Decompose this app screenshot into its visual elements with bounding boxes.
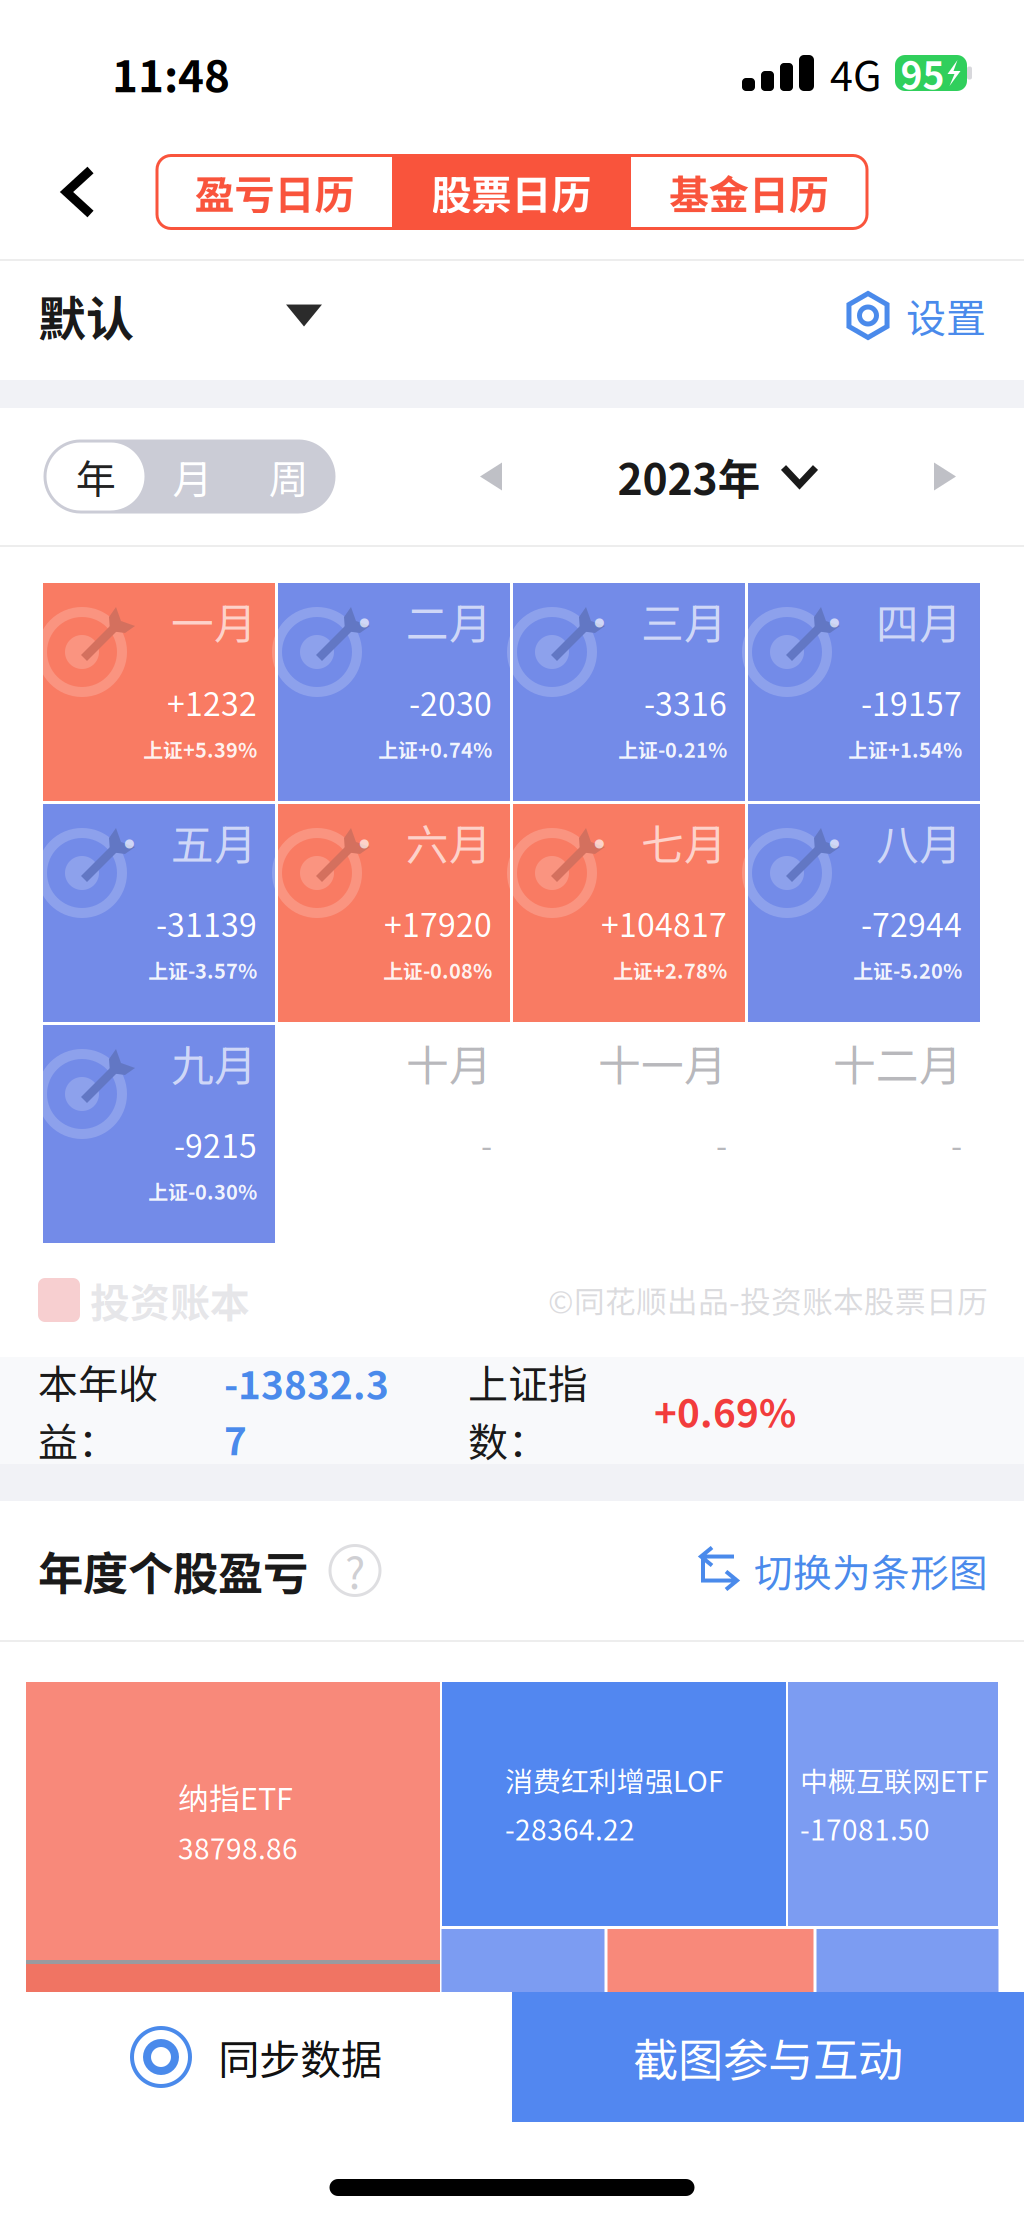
staticText: · 四月 — [813, 590, 962, 652]
staticText: +0.69% — [654, 1382, 796, 1438]
staticText: · 七月 — [578, 811, 727, 873]
staticText: 设置 — [906, 286, 986, 344]
button[interactable]: 十二月 — [748, 1025, 980, 1243]
button[interactable]: 周 — [240, 442, 336, 510]
staticText: ? — [345, 1540, 365, 1601]
staticText: - — [716, 1121, 727, 1167]
staticText: 消费红利增强LOF — [505, 1759, 723, 1800]
staticText: 切换为条形图 — [754, 1542, 988, 1598]
button[interactable]: · 三月 — [513, 583, 745, 801]
button[interactable]: 盈亏日历 — [157, 155, 392, 228]
button[interactable]: 设置 — [844, 261, 1024, 370]
staticText: +1232 — [167, 679, 257, 725]
button[interactable]: 消费红利增强LOF — [442, 1682, 786, 1926]
staticText: 十月 — [406, 1032, 492, 1094]
button[interactable]: 基金日历 — [631, 155, 867, 228]
staticText: 基金日历 — [669, 163, 829, 221]
staticText: 上证-0.21% — [618, 734, 727, 763]
staticText: ©同花顺出品-投资账本股票日历 — [548, 1278, 988, 1322]
staticText: 十二月 — [833, 1032, 962, 1094]
staticText: 默认 — [38, 281, 134, 350]
staticText: 上证+2.78% — [613, 955, 727, 984]
button[interactable]: Back — [0, 142, 157, 242]
button[interactable]: · 五月 — [43, 804, 275, 1022]
staticText: 十一月 — [598, 1032, 727, 1094]
staticText: 本年收益： — [38, 1353, 158, 1468]
staticText: +104817 — [601, 900, 727, 946]
button[interactable]: 默认 — [0, 261, 322, 370]
staticText: -2030 — [409, 679, 492, 725]
staticText: 月 — [172, 447, 212, 505]
staticText: -72944 — [861, 900, 962, 946]
staticText: · 三月 — [578, 590, 727, 652]
staticText: 4G — [830, 43, 881, 103]
button[interactable]: · 六月 — [278, 804, 510, 1022]
button[interactable]: 年 — [46, 442, 144, 510]
staticText: 一月 — [171, 590, 257, 652]
staticText: -13832.37 — [224, 1354, 389, 1466]
staticText: · 六月 — [343, 811, 492, 873]
staticText: · 八月 — [813, 811, 962, 873]
staticText: 年 — [75, 447, 115, 505]
staticText: 38798.86 — [178, 1827, 298, 1867]
staticText: -28364.22 — [505, 1808, 635, 1848]
staticText: 上证+0.74% — [378, 734, 492, 763]
staticText: 中概互联网ETF — [800, 1759, 988, 1800]
button[interactable]: · 四月 — [748, 583, 980, 801]
staticText: 上证-0.30% — [148, 1176, 257, 1205]
button[interactable]: Previous year — [454, 439, 528, 513]
button[interactable]: 股票日历 — [392, 155, 631, 228]
staticText: 上证-0.08% — [383, 955, 492, 984]
staticText: 上证-5.20% — [853, 955, 962, 984]
staticText: · 五月 — [108, 811, 257, 873]
staticText: -19157 — [861, 679, 962, 725]
staticText: -31139 — [156, 900, 257, 946]
staticText: 盈亏日历 — [194, 163, 354, 221]
button[interactable]: 截图参与互动 — [512, 1992, 1024, 2122]
staticText: -9215 — [174, 1121, 257, 1167]
staticText: 上证+5.39% — [143, 734, 257, 763]
staticText: 投资账本 — [90, 1271, 250, 1329]
button[interactable]: 十一月 — [513, 1025, 745, 1243]
staticText: · 二月 — [343, 590, 492, 652]
button[interactable]: Next year — [908, 439, 982, 513]
staticText: 95 — [900, 46, 944, 100]
staticText: 九月 — [171, 1032, 257, 1094]
staticText: 周 — [268, 447, 308, 505]
staticText: -17081.50 — [800, 1808, 930, 1848]
staticText: 上证指数： — [468, 1353, 588, 1468]
button[interactable]: 纳指ETF — [26, 1682, 440, 1960]
button[interactable]: 九月 — [43, 1025, 275, 1243]
staticText: - — [951, 1121, 962, 1167]
button[interactable]: · 八月 — [748, 804, 980, 1022]
staticText: +17920 — [384, 900, 492, 946]
staticText: 股票日历 — [431, 163, 591, 221]
button[interactable]: 2023年 — [617, 439, 818, 513]
staticText: 上证-3.57% — [148, 955, 257, 984]
button[interactable]: · 二月 — [278, 583, 510, 801]
button[interactable]: 十月 — [278, 1025, 510, 1243]
button[interactable]: 同步数据 — [0, 1992, 512, 2122]
staticText: 2023年 — [617, 446, 760, 507]
staticText: 上证+1.54% — [848, 734, 962, 763]
staticText: -3316 — [644, 679, 727, 725]
button[interactable]: · 七月 — [513, 804, 745, 1022]
button[interactable]: 中概互联网ETF — [788, 1682, 998, 1926]
staticText: 11:48 — [112, 41, 230, 105]
button[interactable]: 一月 — [43, 583, 275, 801]
staticText: 同步数据 — [218, 2027, 382, 2087]
staticText: 年度个股盈亏 — [38, 1538, 308, 1603]
staticText: 纳指ETF — [178, 1774, 293, 1819]
staticText: - — [481, 1121, 492, 1167]
button[interactable]: 切换为条形图 — [696, 1542, 988, 1598]
staticText: 截图参与互动 — [633, 2024, 903, 2090]
button[interactable]: 月 — [144, 442, 240, 510]
